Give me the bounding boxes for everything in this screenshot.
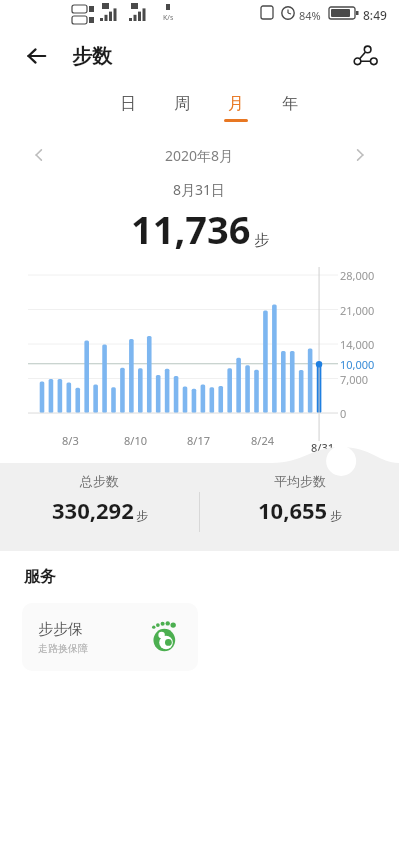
staticText: 步 — [330, 508, 342, 523]
button[interactable]: Back — [16, 36, 56, 76]
staticText: 8/3 — [62, 433, 79, 448]
staticText: 月 — [228, 94, 244, 114]
staticText: 服务 — [24, 567, 56, 587]
button[interactable]: 步步保 — [22, 603, 198, 671]
button[interactable]: Previous month — [22, 138, 56, 172]
button[interactable]: 月 — [224, 94, 248, 122]
staticText: 总步数 — [80, 473, 119, 489]
staticText: 走路换保障 — [38, 642, 88, 655]
staticText: 28,000 — [340, 268, 375, 283]
button[interactable]: 周 — [170, 94, 194, 122]
staticText: 步步保 — [38, 620, 83, 639]
staticText: 周 — [174, 94, 190, 114]
staticText: 7,000 — [340, 372, 369, 387]
button[interactable]: 日 — [116, 94, 140, 122]
staticText: K/s — [163, 13, 174, 23]
staticText: 10,655 — [258, 495, 328, 525]
staticText: 8/31 — [311, 440, 335, 455]
button[interactable]: Share — [345, 36, 385, 76]
button[interactable]: 年 — [278, 94, 302, 122]
staticText: 21,000 — [340, 303, 375, 318]
staticText: 年 — [282, 94, 298, 114]
staticText: 步数 — [72, 44, 112, 69]
staticText: 8/24 — [251, 433, 274, 448]
staticText: 0 — [340, 406, 347, 421]
staticText: 14,000 — [340, 337, 375, 352]
staticText: 步 — [136, 508, 148, 523]
staticText: 步 — [254, 231, 269, 250]
staticText: 11,736 — [131, 203, 251, 255]
staticText: 84% — [299, 8, 321, 23]
button[interactable]: 平均步数 — [200, 473, 399, 525]
staticText: 8月31日 — [173, 180, 226, 199]
staticText: 8/17 — [187, 433, 210, 448]
button[interactable]: Next month — [343, 138, 377, 172]
staticText: 8:49 — [363, 7, 387, 23]
staticText: 2020年8月 — [165, 146, 234, 165]
staticText: 平均步数 — [274, 473, 326, 489]
staticText: 10,000 — [340, 357, 375, 372]
button[interactable]: 总步数 — [0, 473, 199, 525]
staticText: 8/10 — [124, 433, 147, 448]
staticText: 日 — [120, 94, 136, 114]
staticText: 330,292 — [52, 495, 134, 525]
